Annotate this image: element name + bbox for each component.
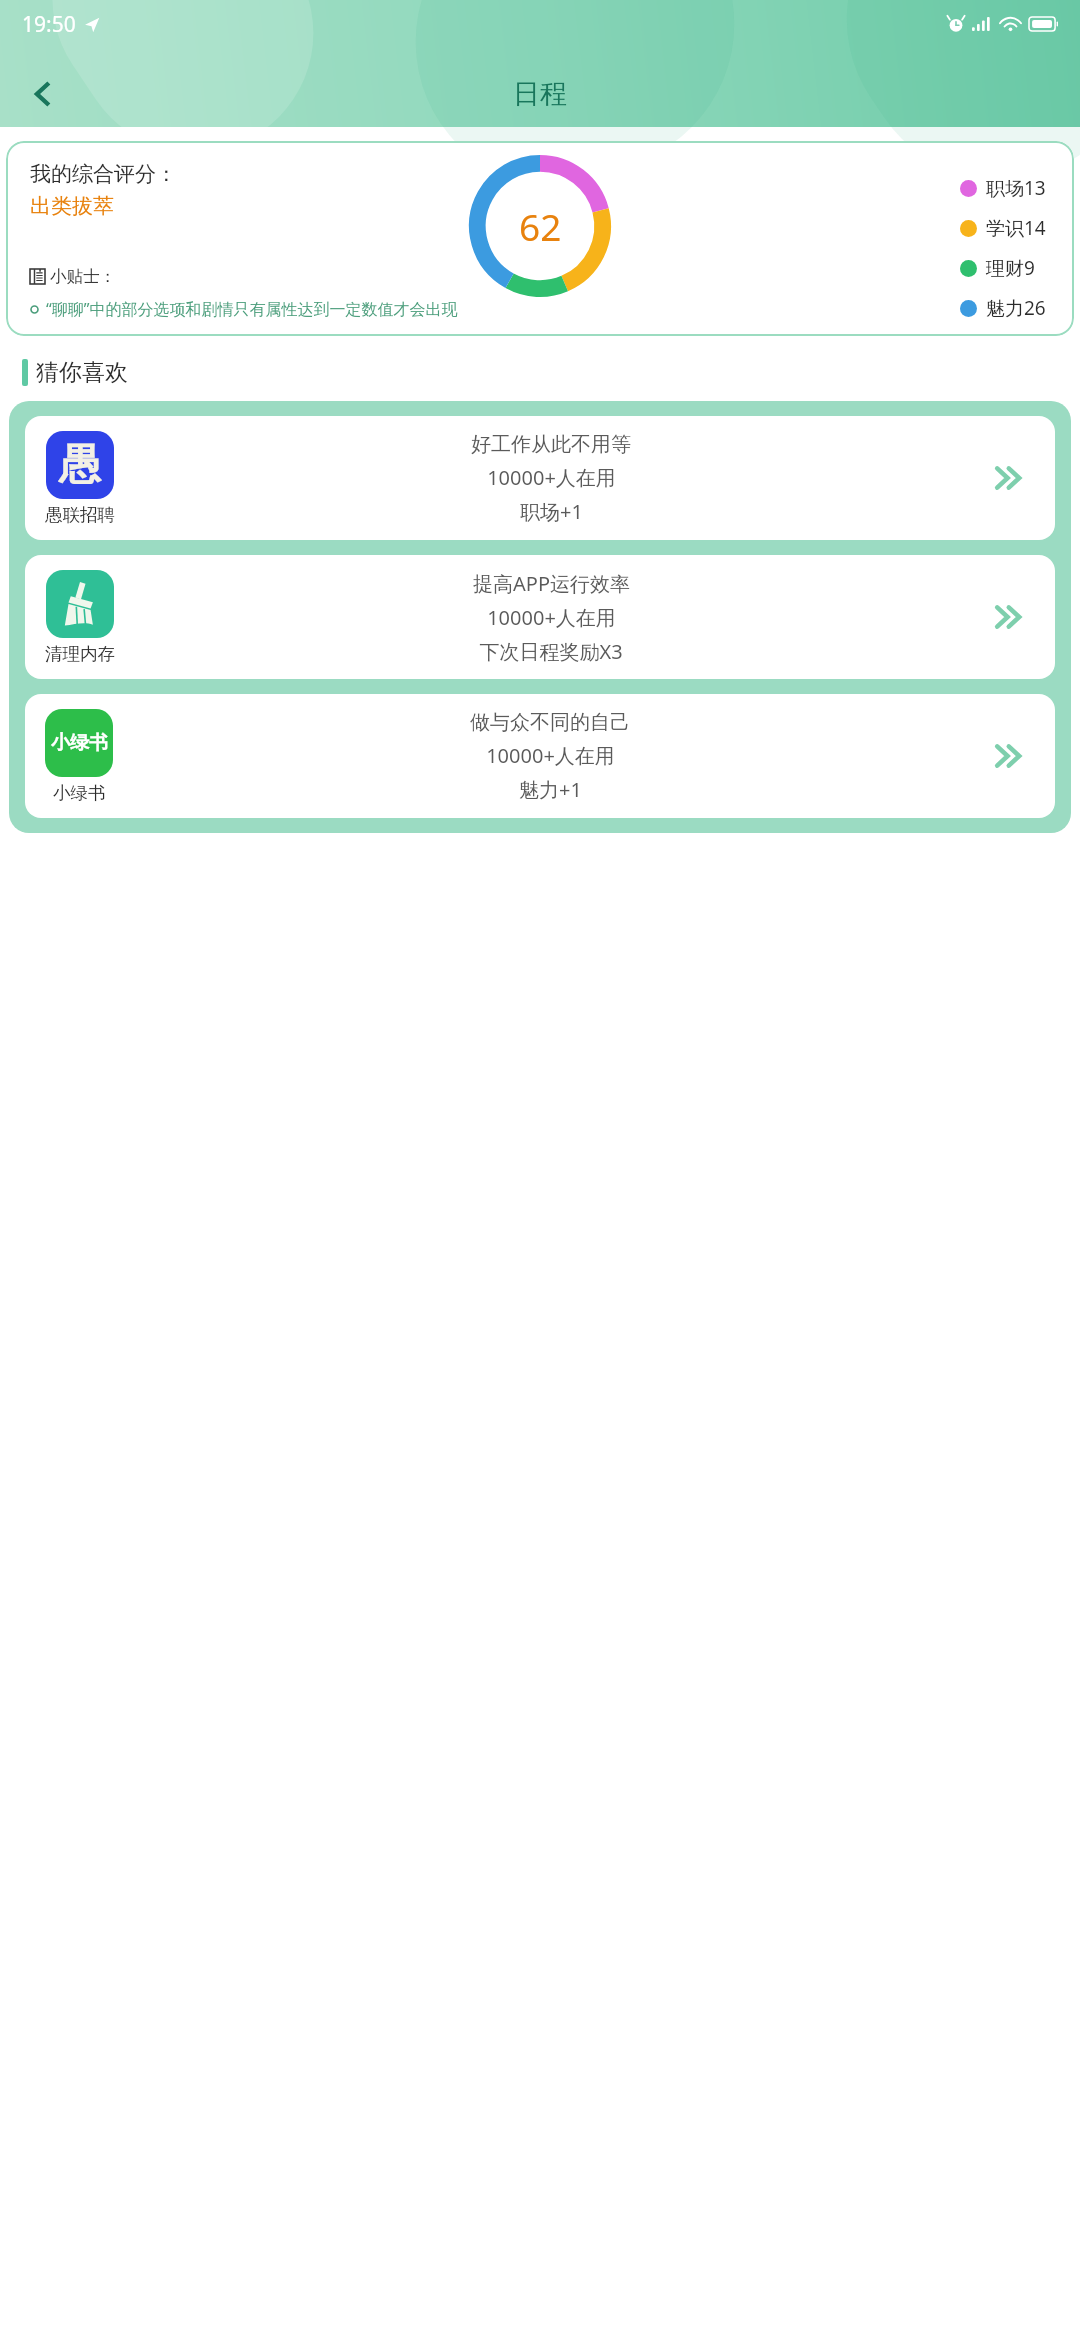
staticText: 猜你喜欢 bbox=[36, 358, 128, 387]
staticText: 小贴士： bbox=[50, 266, 116, 287]
other: Open 愚联招聘 bbox=[987, 455, 1033, 501]
staticText: 我的综合评分： bbox=[30, 161, 177, 187]
staticText: 好工作从此不用等 bbox=[471, 432, 631, 457]
staticText: 62 bbox=[519, 201, 562, 251]
staticText: 清理内存 bbox=[45, 643, 115, 665]
staticText: 10000+人在用 bbox=[486, 742, 615, 769]
staticText: 出类拔萃 bbox=[30, 193, 114, 219]
staticText: 日程 bbox=[513, 77, 567, 111]
button[interactable]: 愚 bbox=[25, 416, 1055, 540]
button[interactable]: 我的综合评分： bbox=[6, 141, 1074, 336]
staticText: 愚 bbox=[59, 439, 101, 492]
button[interactable]: 小绿书 bbox=[25, 694, 1055, 818]
staticText: 小绿书 bbox=[53, 782, 106, 804]
staticText: 职场+1 bbox=[520, 498, 583, 525]
button[interactable]: Back bbox=[18, 68, 70, 120]
staticText: 理财9 bbox=[986, 255, 1035, 281]
staticText: 提高APP运行效率 bbox=[473, 570, 630, 597]
staticText: 10000+人在用 bbox=[487, 464, 616, 491]
staticText: 魅力+1 bbox=[519, 776, 582, 803]
button[interactable]: 清理内存 bbox=[25, 555, 1055, 679]
staticText: 做与众不同的自己 bbox=[470, 710, 630, 735]
staticText: 魅力26 bbox=[986, 295, 1046, 321]
staticText: 19:50 bbox=[22, 10, 76, 39]
other: Open 小绿书 bbox=[987, 733, 1033, 779]
staticText: 小绿书 bbox=[51, 731, 108, 755]
staticText: 职场13 bbox=[986, 175, 1046, 201]
staticText: 学识14 bbox=[986, 215, 1046, 241]
staticText: 愚联招聘 bbox=[45, 504, 115, 526]
staticText: “聊聊”中的部分选项和剧情只有属性达到一定数值才会出现 bbox=[46, 298, 458, 320]
staticText: 10000+人在用 bbox=[487, 604, 616, 631]
staticText: 下次日程奖励X3 bbox=[479, 638, 623, 665]
other: Open 清理内存 bbox=[987, 594, 1033, 640]
